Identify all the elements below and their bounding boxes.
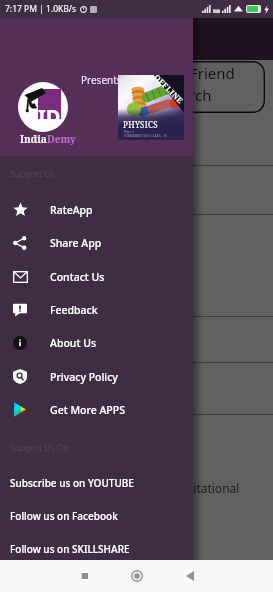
staticText: 7:17 PM | 1.0KB/s — [5, 3, 77, 15]
button[interactable]: Back — [179, 560, 201, 592]
button[interactable]: Get More APPS — [0, 393, 193, 426]
button[interactable]: Follow us on SKILLSHARE — [0, 532, 193, 565]
staticText: Privacy Policy — [50, 370, 118, 384]
staticText: OFFLINE — [152, 72, 186, 106]
staticText: About Us — [50, 336, 96, 350]
staticText: Demy — [47, 132, 76, 146]
button[interactable]: About Us — [0, 326, 193, 359]
staticText: Feedback — [50, 303, 98, 317]
button[interactable]: Home — [126, 560, 148, 592]
staticText: Contact Us — [50, 270, 105, 284]
staticText: Invite a Friend — [134, 63, 235, 83]
button[interactable]: Subscribe us on YOUTUBE — [0, 466, 193, 499]
staticText: PHYSICS — [123, 119, 159, 130]
button[interactable]: Follow us on Facebook — [0, 499, 193, 532]
button[interactable]: RateApp — [0, 193, 193, 226]
staticText: Presents — [81, 73, 122, 87]
staticText: Gravitational — [167, 480, 240, 496]
staticText: Follow us on Facebook — [10, 509, 118, 523]
staticText: Support Us On — [10, 442, 69, 454]
staticText: RateApp — [50, 203, 93, 217]
staticText: Follow us on SKILLSHARE — [10, 542, 130, 556]
staticText: STANDARD XIth CLASS - XI — [124, 133, 167, 138]
staticText: India — [20, 132, 47, 146]
button[interactable]: Feedback — [0, 293, 193, 326]
staticText: Support Us — [10, 168, 55, 180]
staticText: Get More APPS — [50, 403, 125, 417]
staticText: Part-1 — [124, 129, 134, 134]
button[interactable]: Recents — [74, 560, 96, 592]
staticText: Search — [164, 85, 212, 105]
staticText: Subscribe us on YOUTUBE — [10, 476, 134, 490]
staticText: Share App — [50, 236, 102, 250]
staticText: ID — [38, 103, 61, 130]
button[interactable]: Contact Us — [0, 260, 193, 293]
button[interactable]: Privacy Policy — [0, 360, 193, 393]
button[interactable]: Share App — [0, 226, 193, 259]
